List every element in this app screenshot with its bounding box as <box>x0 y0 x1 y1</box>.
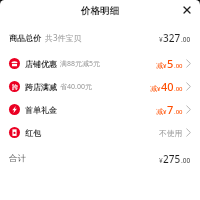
other: More <box>186 59 191 68</box>
staticText: 满88元减5元 <box>60 59 101 69</box>
staticText: 价格明细 <box>81 5 119 17</box>
staticText: 跨店满减 <box>25 82 57 92</box>
button[interactable]: Close <box>180 3 194 17</box>
staticText: .00 <box>174 85 183 93</box>
button[interactable]: 首单礼金 <box>0 98 200 121</box>
staticText: 合计 <box>9 153 26 164</box>
staticText: ¥ <box>157 85 161 93</box>
staticText: .00 <box>174 108 183 116</box>
other: More <box>186 82 191 91</box>
staticText: ¥ <box>163 62 167 70</box>
staticText: 不使用 <box>159 128 183 138</box>
staticText: 首单礼金 <box>25 105 57 115</box>
button[interactable]: 红包 <box>0 121 200 144</box>
staticText: 商品总价 <box>9 33 41 43</box>
staticText: 5 <box>167 56 174 71</box>
staticText: ¥ <box>159 156 163 165</box>
staticText: ¥ <box>163 108 167 116</box>
staticText: 减 <box>150 84 157 93</box>
staticText: .00 <box>181 35 191 44</box>
staticText: .00 <box>181 156 191 165</box>
other: More <box>186 128 191 137</box>
button[interactable]: 跨 <box>0 75 200 98</box>
staticText: 减 <box>156 61 163 70</box>
staticText: 跨 <box>12 83 18 91</box>
other: More <box>186 105 191 114</box>
staticText: 7 <box>167 102 174 117</box>
staticText: ¥ <box>159 35 163 44</box>
button[interactable]: 商品总价 <box>0 26 200 49</box>
button[interactable]: 店铺优惠 <box>0 52 200 75</box>
staticText: 减 <box>156 107 163 116</box>
staticText: 红包 <box>25 128 41 138</box>
staticText: 275 <box>163 152 181 166</box>
staticText: 店铺优惠 <box>25 59 57 69</box>
staticText: 40 <box>161 79 174 94</box>
staticText: 省40.00元 <box>60 82 92 92</box>
staticText: .00 <box>174 62 183 70</box>
staticText: 共3件宝贝 <box>45 32 82 43</box>
staticText: 327 <box>163 31 181 45</box>
